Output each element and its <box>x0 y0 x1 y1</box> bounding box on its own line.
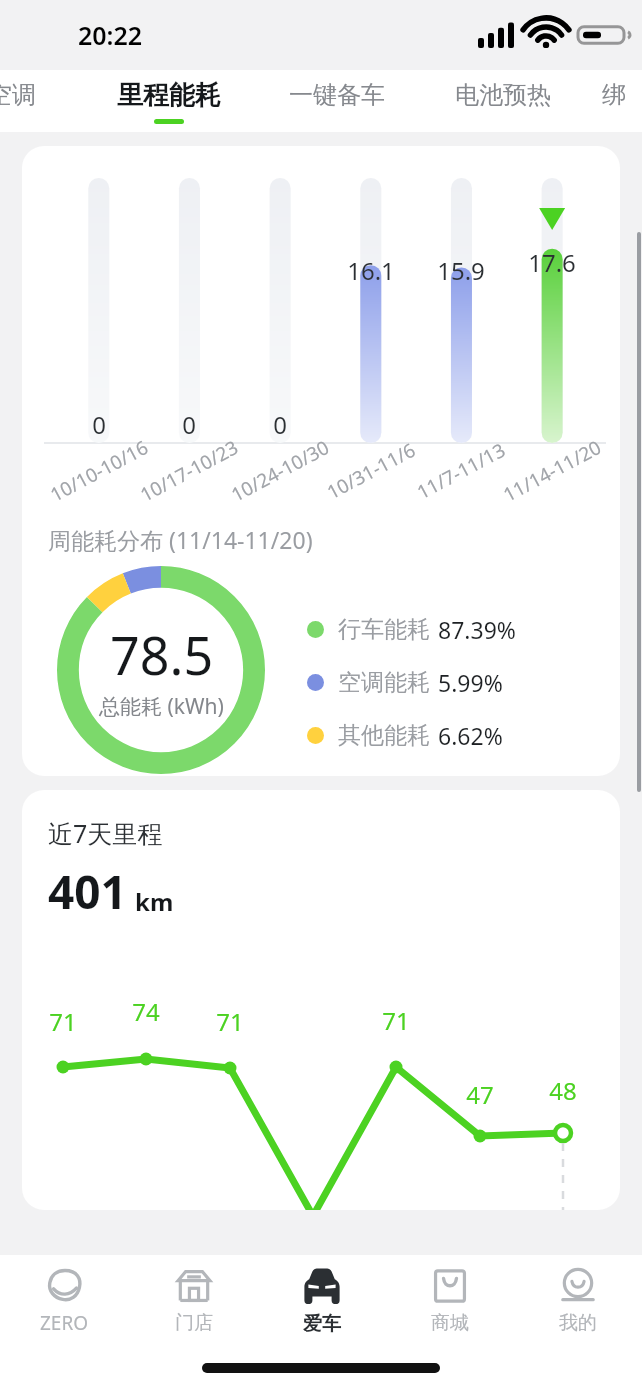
staticText: 10/17-10/23 <box>128 430 250 512</box>
staticText: km <box>135 885 174 918</box>
staticText: 10/31-11/6 <box>310 430 432 512</box>
staticText: 行车能耗 <box>338 615 430 644</box>
staticText: 爱车 <box>303 1312 341 1336</box>
button[interactable]: 绑 <box>586 70 642 132</box>
button[interactable]: 电池预热 <box>420 70 586 132</box>
staticText: 78.5 <box>110 619 214 690</box>
staticText: 商城 <box>431 1311 469 1335</box>
staticText: 0 <box>238 408 322 441</box>
staticText: 15.9 <box>419 254 503 287</box>
button[interactable]: 里程能耗 <box>84 70 254 132</box>
staticText: 5.99% <box>438 667 503 698</box>
staticText: 74 <box>106 995 186 1028</box>
staticText: 近7天里程 <box>48 816 163 850</box>
staticText: 电池预热 <box>455 80 551 110</box>
staticText: 401 <box>48 860 127 923</box>
button[interactable]: 门店 <box>129 1255 258 1347</box>
staticText: 0 <box>147 408 231 441</box>
staticText: 门店 <box>175 1311 213 1335</box>
staticText: 绑 <box>602 80 626 110</box>
staticText: 0 <box>57 408 141 441</box>
staticText: 71 <box>190 1005 270 1038</box>
staticText: 11/7-11/13 <box>400 430 522 512</box>
staticText: 71 <box>356 1004 436 1037</box>
staticText: 里程能耗 <box>117 79 221 112</box>
staticText: 空调 <box>0 80 36 110</box>
staticText: 10/10-10/16 <box>38 430 160 512</box>
staticText: ZERO <box>40 1310 89 1336</box>
staticText: 其他能耗 <box>338 721 430 750</box>
staticText: 空调能耗 <box>338 668 430 697</box>
staticText: 87.39% <box>438 614 516 645</box>
staticText: 71 <box>23 1005 103 1038</box>
staticText: 总能耗 (kWh) <box>99 692 224 721</box>
staticText: 47 <box>440 1078 520 1111</box>
button[interactable]: ZERO <box>0 1255 129 1347</box>
button[interactable]: 我的 <box>514 1255 642 1347</box>
button[interactable]: 商城 <box>386 1255 514 1347</box>
staticText: 周能耗分布 (11/14-11/20) <box>48 524 313 555</box>
button[interactable]: 爱车 <box>258 1255 386 1347</box>
button[interactable]: 一键备车 <box>254 70 420 132</box>
staticText: 我的 <box>559 1311 597 1335</box>
staticText: 一键备车 <box>289 80 385 110</box>
staticText: 6.62% <box>438 720 503 751</box>
staticText: 20:22 <box>78 18 143 52</box>
staticText: 10/24-10/30 <box>219 430 341 512</box>
staticText: 11/14-11/20 <box>491 430 613 512</box>
staticText: 16.1 <box>329 254 413 287</box>
staticText: 17.6 <box>510 246 594 279</box>
staticText: 48 <box>523 1074 603 1107</box>
button[interactable]: 空调 <box>0 70 54 132</box>
